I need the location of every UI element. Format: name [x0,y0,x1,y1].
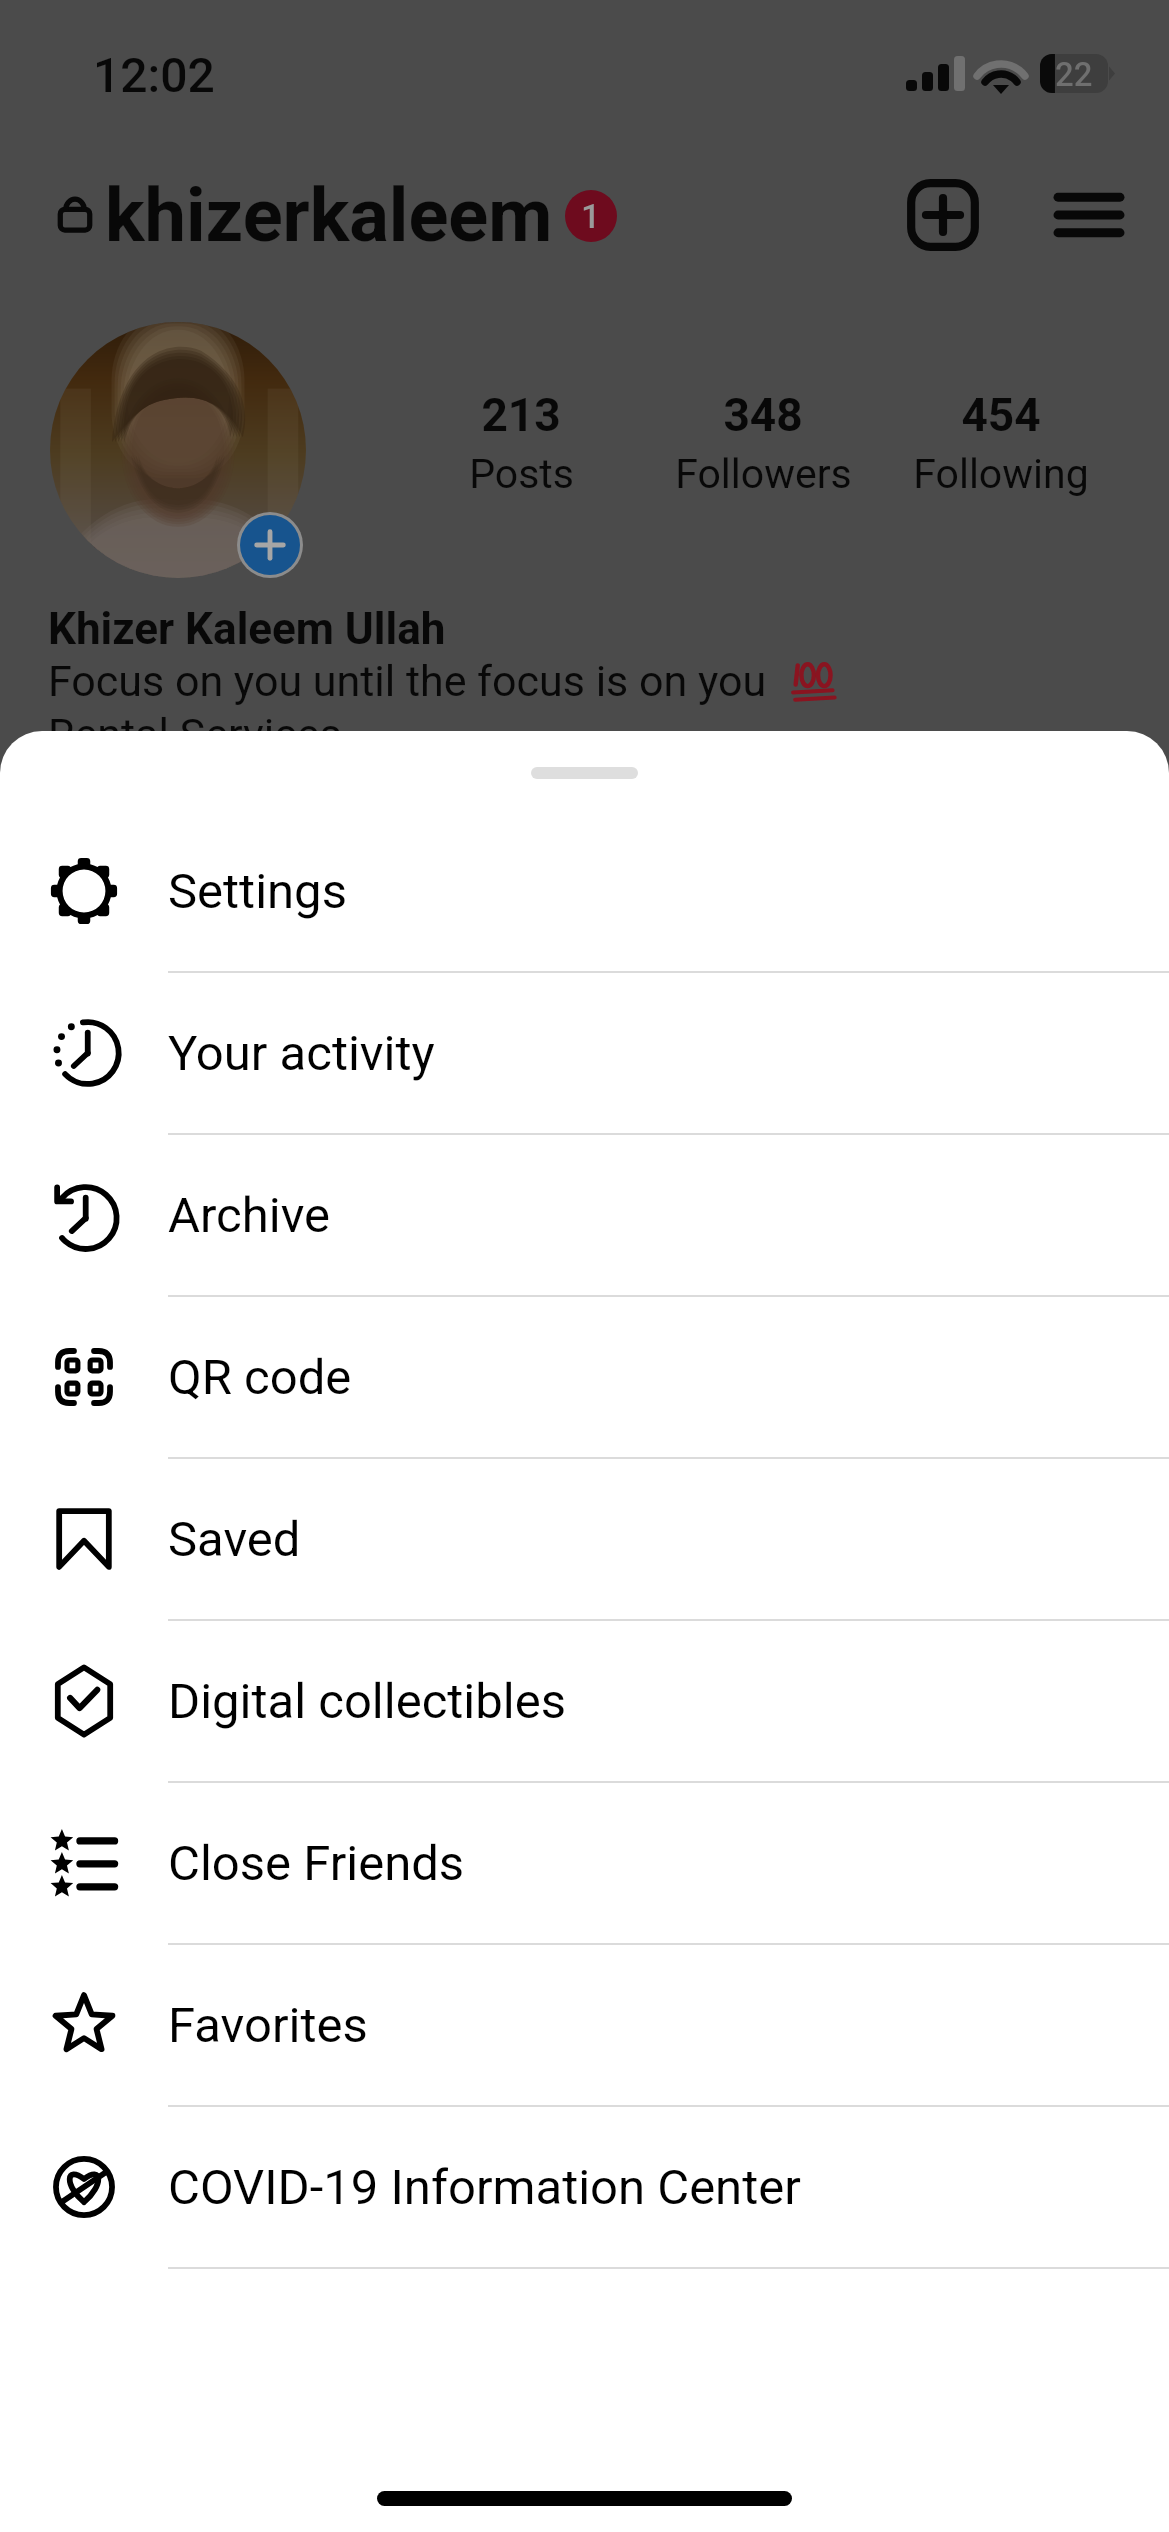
staticText: Posts [469,450,574,498]
staticText: Your activity [168,1025,435,1082]
staticText: Archive [168,1187,331,1244]
button[interactable]: Close Friends [0,1783,1169,1945]
button[interactable]: Settings [0,811,1169,973]
staticText: Favorites [168,1997,368,2054]
staticText: Focus on you until the focus is on you [48,656,767,706]
staticText: Settings [168,863,347,920]
staticText: 22 [1055,55,1093,94]
staticText: Following [913,450,1089,498]
staticText: 1 [581,196,601,236]
button[interactable]: Saved [0,1459,1169,1621]
button[interactable]: Favorites [0,1945,1169,2107]
staticText: 454 [961,388,1041,442]
staticText: 213 [481,388,561,442]
staticText: 348 [723,388,803,442]
button[interactable]: Archive [0,1135,1169,1297]
button[interactable]: QR code [0,1297,1169,1459]
staticText: QR code [168,1349,352,1406]
button[interactable]: Your activity [0,973,1169,1135]
staticText: 12:02 [93,47,215,103]
staticText: Followers [675,450,852,498]
staticText: Khizer Kaleem Ullah [48,603,446,655]
button[interactable]: COVID-19 Information Center [0,2107,1169,2269]
button[interactable]: Digital collectibles [0,1621,1169,1783]
staticText: Close Friends [168,1835,465,1892]
staticText: COVID-19 Information Center [168,2159,801,2216]
staticText: Rental Services [48,709,342,759]
staticText: Digital collectibles [168,1673,566,1730]
staticText: Saved [168,1511,301,1568]
staticText: khizerkaleem [105,172,553,259]
